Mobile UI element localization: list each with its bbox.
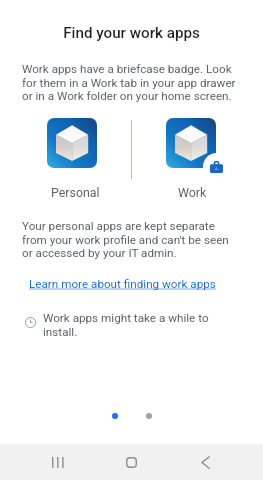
staticText: Work apps have a briefcase badge. Look f… [22, 62, 244, 102]
staticText: Personal [51, 185, 100, 200]
button[interactable]: Personal apps [47, 118, 97, 168]
button[interactable]: Work apps [166, 118, 216, 168]
staticText: Find your work apps [0, 24, 263, 42]
button[interactable]: Learn more about finding work apps [29, 277, 216, 291]
staticText: Work [178, 185, 207, 200]
staticText: Your personal apps are kept separate fro… [22, 219, 237, 259]
button[interactable]: Recent apps [35, 444, 79, 480]
button[interactable]: Home [109, 444, 153, 480]
staticText: Work apps might take a while to install. [43, 311, 223, 338]
staticText: Learn more about finding work apps [29, 277, 216, 291]
button[interactable]: Back [183, 444, 227, 480]
